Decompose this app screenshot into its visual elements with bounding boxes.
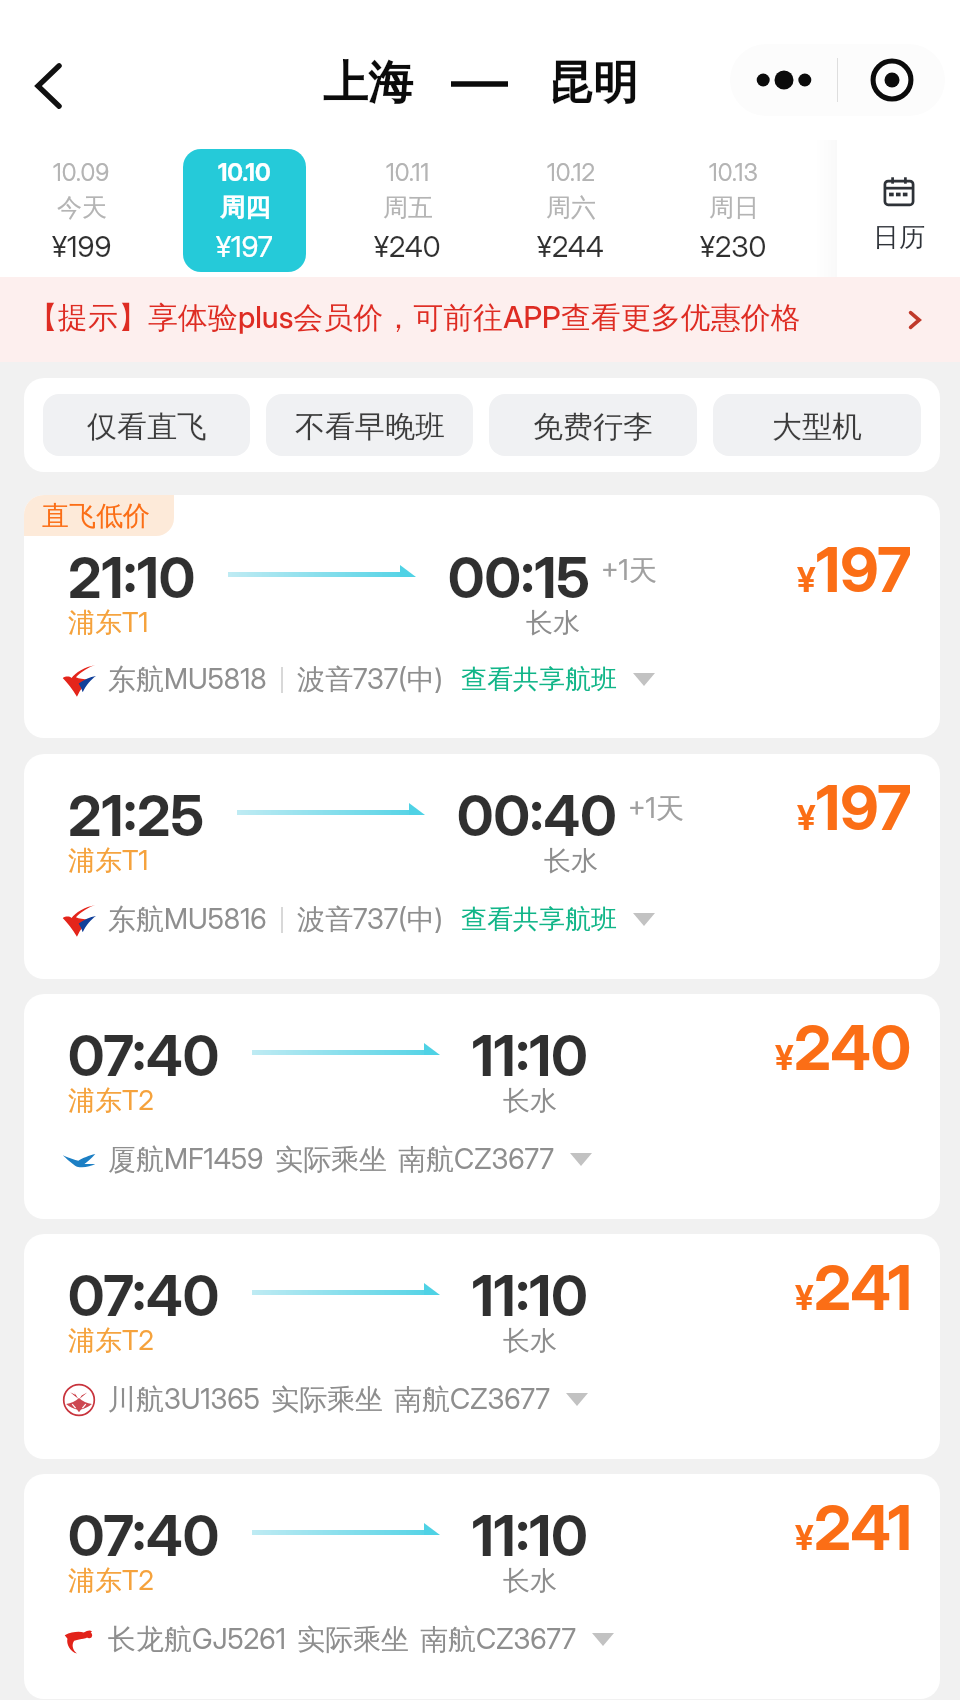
staticText: 南航CZ3677	[394, 1382, 550, 1417]
staticText: ¥	[797, 797, 816, 838]
staticText: 查看共享航班	[461, 663, 617, 696]
staticText: ¥	[797, 559, 816, 600]
staticText: 长龙航GJ5261	[108, 1622, 286, 1657]
staticText: 197	[816, 532, 912, 607]
staticText: 07:40	[68, 1502, 220, 1570]
staticText: 东航MU5816	[108, 902, 267, 937]
staticText: 川航3U1365	[108, 1382, 260, 1417]
button[interactable]: 10.11	[346, 149, 469, 272]
button[interactable]: 07:40	[24, 1474, 940, 1699]
staticText: 21:10	[68, 544, 196, 612]
staticText: 周日	[709, 192, 759, 223]
button[interactable]: 不看早晚班	[266, 394, 473, 456]
staticText: ¥240	[374, 229, 441, 264]
staticText: 不看早晚班	[295, 408, 445, 446]
button[interactable]: 10.10	[183, 149, 306, 272]
staticText: 南航CZ3677	[420, 1622, 576, 1657]
staticText: 昆明	[548, 55, 638, 112]
staticText: 21:25	[68, 782, 205, 850]
staticText: 07:40	[68, 1022, 220, 1090]
staticText: 11:10	[472, 1262, 588, 1330]
staticText: 长水	[526, 606, 580, 640]
staticText: 浦东T1	[68, 844, 149, 878]
staticText: 07:40	[68, 1262, 220, 1330]
staticText: 厦航MF1459	[108, 1142, 264, 1177]
staticText: 10.10	[218, 158, 271, 187]
staticText: 实际乘坐	[275, 1142, 387, 1177]
staticText: 浦东T1	[68, 606, 149, 640]
button[interactable]: More options	[730, 44, 837, 116]
staticText: ¥	[775, 1037, 794, 1078]
staticText: 波音737(中)	[297, 902, 443, 937]
staticText: ¥199	[52, 229, 112, 264]
staticText: ¥244	[537, 229, 604, 264]
staticText: +1天	[628, 791, 684, 826]
button[interactable]: 10.12	[509, 149, 632, 272]
button[interactable]: 仅看直飞	[43, 394, 250, 456]
staticText: 【提示】享体验plus会员价，可前往APP查看更多优惠价格	[28, 299, 801, 337]
staticText: 浦东T2	[68, 1324, 154, 1358]
staticText: 241	[814, 1250, 912, 1325]
button[interactable]: 日历	[837, 140, 960, 277]
staticText: 00:40	[457, 782, 617, 850]
staticText: 实际乘坐	[297, 1622, 409, 1657]
staticText: 波音737(中)	[297, 662, 443, 697]
button[interactable]: 10.13	[672, 149, 795, 272]
staticText: 大型机	[772, 408, 862, 446]
staticText: 周六	[546, 192, 596, 223]
staticText: 长水	[503, 1564, 557, 1598]
staticText: ¥230	[700, 229, 767, 264]
button[interactable]: 07:40	[24, 1234, 940, 1459]
staticText: 11:10	[472, 1022, 588, 1090]
button[interactable]: 直飞低价	[24, 495, 940, 738]
button[interactable]: 免费行李	[489, 394, 697, 456]
staticText: 10.12	[547, 158, 595, 187]
staticText: 日历	[873, 221, 925, 254]
staticText: 00:15	[448, 544, 590, 612]
staticText: 直飞低价	[42, 499, 150, 533]
staticText: 241	[814, 1490, 912, 1565]
staticText: 周五	[383, 192, 433, 223]
staticText: ¥	[795, 1277, 814, 1318]
staticText: 仅看直飞	[87, 408, 207, 446]
staticText: 浦东T2	[68, 1564, 154, 1598]
staticText: +1天	[601, 553, 657, 588]
staticText: 查看共享航班	[461, 903, 617, 936]
staticText: 10.11	[386, 158, 430, 187]
staticText: 南航CZ3677	[398, 1142, 554, 1177]
staticText: 10.09	[53, 158, 110, 187]
button[interactable]: 大型机	[713, 394, 921, 456]
staticText: 240	[794, 1010, 912, 1085]
staticText: 上海	[323, 55, 413, 112]
staticText: 实际乘坐	[271, 1382, 383, 1417]
staticText: 197	[816, 770, 912, 845]
staticText: 周四	[220, 192, 270, 223]
staticText: 10.13	[709, 158, 758, 187]
staticText: 长水	[544, 844, 598, 878]
staticText: ¥197	[216, 229, 273, 264]
staticText: 长水	[503, 1324, 557, 1358]
staticText: 免费行李	[533, 408, 653, 446]
button[interactable]: 10.09	[20, 149, 143, 272]
staticText: 11:10	[472, 1502, 588, 1570]
staticText: 今天	[57, 192, 107, 223]
staticText: 长水	[503, 1084, 557, 1118]
button[interactable]: 07:40	[24, 994, 940, 1219]
button[interactable]: Back	[11, 48, 87, 124]
button[interactable]: 21:25	[24, 754, 940, 979]
button[interactable]: 【提示】享体验plus会员价，可前往APP查看更多优惠价格	[0, 277, 960, 362]
staticText: 东航MU5818	[108, 662, 267, 697]
button[interactable]: Close mini program	[838, 44, 945, 116]
staticText: 浦东T2	[68, 1084, 154, 1118]
staticText: ¥	[795, 1517, 814, 1558]
